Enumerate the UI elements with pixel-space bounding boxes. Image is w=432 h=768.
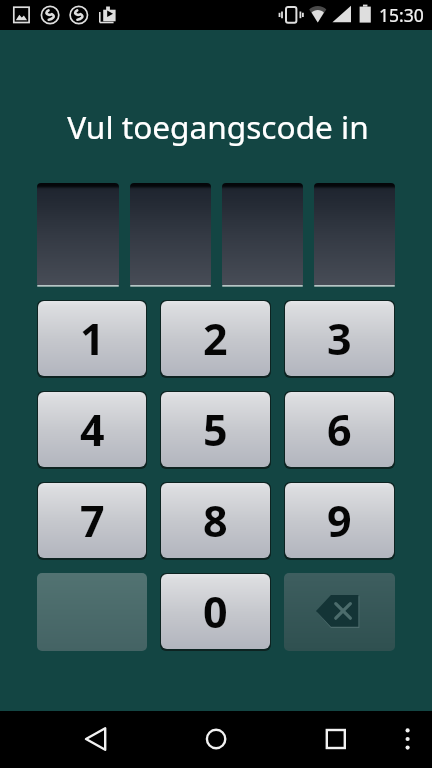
button[interactable]: Home: [96, 711, 240, 768]
staticText: 1: [80, 309, 105, 368]
button[interactable]: 2: [161, 301, 270, 376]
button[interactable]: 0: [161, 574, 270, 649]
staticText: 8: [203, 491, 228, 550]
staticText: 4: [80, 400, 105, 459]
staticText: 0: [203, 582, 228, 641]
button[interactable]: 1: [38, 301, 146, 376]
button[interactable]: Back: [0, 711, 96, 768]
staticText: 2: [203, 309, 228, 368]
button[interactable]: 7: [38, 483, 146, 558]
button[interactable]: 4: [38, 392, 146, 467]
button[interactable]: Backspace: [284, 573, 395, 651]
button[interactable]: 5: [161, 392, 270, 467]
staticText: 6: [327, 400, 352, 459]
staticText: 9: [327, 491, 352, 550]
button[interactable]: [37, 573, 147, 651]
button[interactable]: 9: [285, 483, 394, 558]
button[interactable]: Recent apps: [240, 711, 360, 768]
staticText: Vul toegangscode in: [2, 105, 432, 148]
button[interactable]: 6: [285, 392, 394, 467]
staticText: 5: [203, 400, 228, 459]
button[interactable]: More options: [360, 711, 432, 768]
button[interactable]: 8: [161, 483, 270, 558]
staticText: 15:30: [379, 3, 424, 27]
button[interactable]: 3: [285, 301, 394, 376]
staticText: 3: [327, 309, 352, 368]
staticText: 7: [80, 491, 105, 550]
